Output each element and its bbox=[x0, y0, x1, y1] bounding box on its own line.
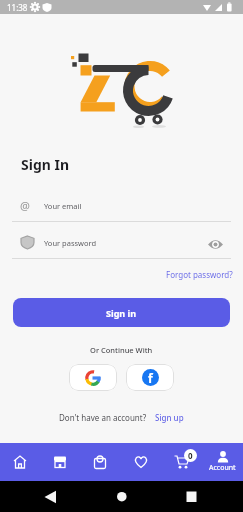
button[interactable]: Sign in bbox=[13, 298, 230, 327]
staticText: 11:38 bbox=[7, 2, 28, 13]
staticText: Your email bbox=[44, 201, 82, 211]
button[interactable]: Forgot password? bbox=[160, 266, 227, 277]
button[interactable] bbox=[0, 443, 40, 481]
staticText: Sign up bbox=[155, 412, 184, 423]
staticText: Account bbox=[209, 463, 236, 473]
staticText: Forgot password? bbox=[166, 269, 233, 280]
staticText: Sign In bbox=[21, 155, 70, 174]
staticText: f bbox=[148, 370, 153, 386]
staticText: 0 bbox=[188, 450, 193, 461]
staticText: Or Continue With bbox=[90, 345, 153, 355]
button[interactable] bbox=[120, 443, 161, 481]
button[interactable]: f bbox=[126, 364, 174, 391]
button[interactable] bbox=[161, 443, 202, 481]
button[interactable]: Account bbox=[202, 443, 243, 481]
button[interactable] bbox=[208, 239, 223, 250]
staticText: Your password bbox=[44, 238, 97, 248]
staticText: Sign in bbox=[106, 307, 137, 319]
button[interactable] bbox=[40, 443, 80, 481]
staticText: @ bbox=[20, 198, 30, 213]
staticText: Don't have an account? bbox=[59, 412, 147, 423]
button[interactable]: Sign up bbox=[155, 412, 184, 423]
button[interactable] bbox=[80, 443, 120, 481]
button[interactable] bbox=[69, 364, 117, 391]
